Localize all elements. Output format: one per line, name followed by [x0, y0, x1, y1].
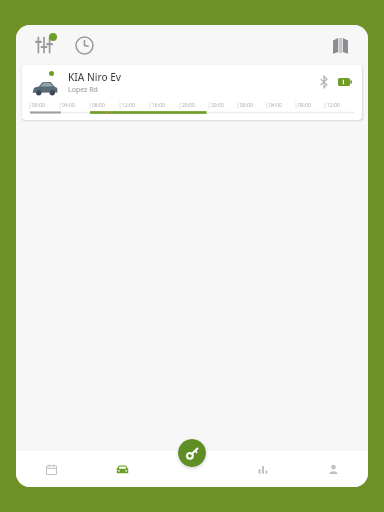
staticText: 08:00 — [92, 102, 105, 109]
button[interactable]: KIA Niro Ev — [22, 65, 362, 120]
button[interactable]: Vehicles — [87, 451, 158, 487]
button[interactable]: Statistics — [228, 451, 298, 487]
staticText: 00:00 — [32, 102, 45, 109]
button[interactable]: Profile — [298, 451, 368, 487]
button[interactable]: Unlock vehicle — [178, 439, 206, 467]
staticText: 04:00 — [62, 102, 75, 109]
button[interactable]: Trips — [16, 451, 87, 487]
staticText: 00:00 — [240, 102, 253, 109]
staticText: 20:00 — [182, 102, 195, 109]
staticText: 12:00 — [122, 102, 135, 109]
button[interactable]: Map — [322, 27, 358, 63]
staticText: 20:00 — [211, 102, 224, 109]
button[interactable]: Filter — [26, 27, 62, 63]
staticText: Lopez Rd — [68, 85, 98, 95]
staticText: 08:00 — [298, 102, 311, 109]
staticText: 16:00 — [152, 102, 165, 109]
staticText: 12:00 — [327, 102, 340, 109]
staticText: 04:00 — [269, 102, 282, 109]
staticText: KIA Niro Ev — [68, 70, 122, 84]
button[interactable]: History — [66, 27, 102, 63]
